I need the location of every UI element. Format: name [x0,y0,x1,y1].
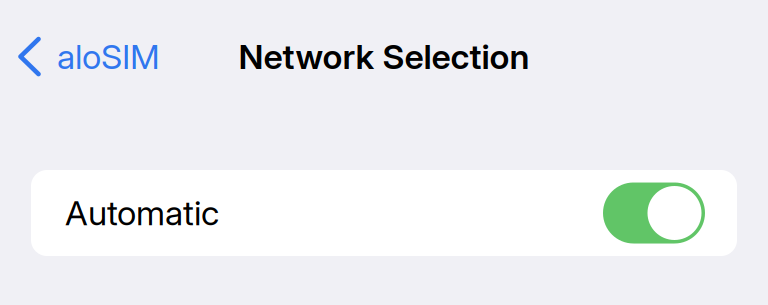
staticText: aloSIM [57,36,160,77]
button[interactable]: aloSIM [0,0,160,77]
button[interactable]: Automatic [31,170,737,256]
staticText: Automatic [65,192,219,233]
staticText: Network Selection [238,36,529,77]
